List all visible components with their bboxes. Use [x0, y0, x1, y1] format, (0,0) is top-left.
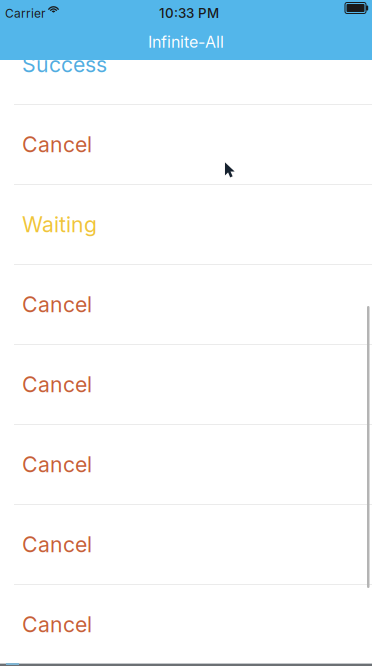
button[interactable]: Success — [0, 25, 372, 105]
button[interactable]: Cancel — [0, 265, 372, 345]
staticText: Cancel — [22, 292, 92, 317]
staticText: Success — [22, 52, 107, 77]
staticText: Carrier — [5, 6, 46, 20]
staticText: Waiting — [22, 212, 97, 237]
button[interactable]: Cancel — [0, 345, 372, 425]
button[interactable]: Cancel — [0, 105, 372, 185]
button[interactable]: Cancel — [0, 505, 372, 585]
staticText: Cancel — [22, 612, 92, 637]
staticText: Infinite-All — [148, 32, 224, 52]
staticText: 10:33 PM — [159, 5, 219, 21]
button[interactable]: Cancel — [0, 425, 372, 505]
button[interactable]: Cancel — [0, 585, 372, 665]
staticText: Cancel — [22, 452, 92, 477]
button[interactable]: Waiting — [0, 185, 372, 265]
staticText: Cancel — [22, 372, 92, 397]
staticText: Cancel — [22, 532, 92, 557]
staticText: Cancel — [22, 132, 92, 157]
